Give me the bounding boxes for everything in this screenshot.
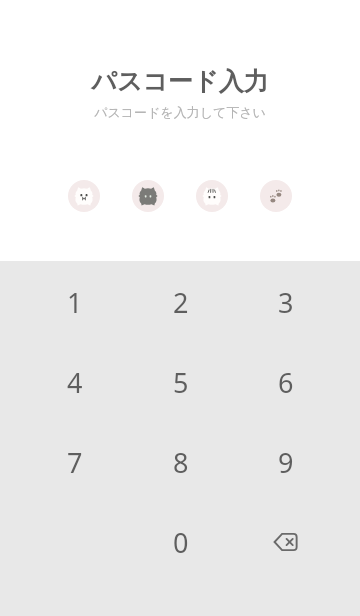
staticText: パスコードを入力して下さい (94, 104, 266, 120)
staticText: 0 (173, 524, 189, 561)
button[interactable]: 4 (22, 342, 128, 422)
staticText: 6 (278, 364, 294, 401)
button[interactable]: 1 (22, 262, 128, 342)
button[interactable]: 2 (128, 262, 233, 342)
staticText: 4 (67, 364, 83, 401)
staticText: パスコード入力 (91, 66, 269, 97)
button[interactable]: 0 (128, 502, 233, 582)
staticText: 3 (278, 284, 294, 321)
staticText: 2 (173, 284, 189, 321)
button[interactable]: Backspace (233, 502, 338, 582)
button[interactable]: 6 (233, 342, 338, 422)
button[interactable]: 7 (22, 422, 128, 502)
staticText: 9 (278, 444, 294, 481)
staticText: 8 (173, 444, 189, 481)
button[interactable]: 8 (128, 422, 233, 502)
staticText: 5 (173, 364, 189, 401)
button[interactable]: 3 (233, 262, 338, 342)
staticText: 1 (67, 284, 83, 321)
staticText: 7 (67, 444, 83, 481)
button[interactable]: 9 (233, 422, 338, 502)
button[interactable]: 5 (128, 342, 233, 422)
other: Backspace (272, 528, 300, 556)
